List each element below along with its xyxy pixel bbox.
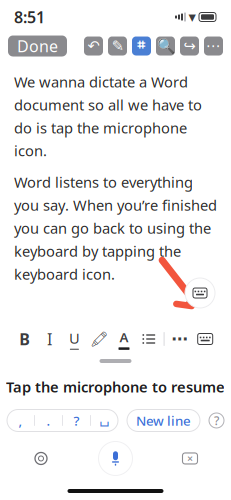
staticText: ? [214,412,219,428]
button[interactable]: Italic [40,328,60,350]
button[interactable]: Font color [114,328,134,350]
button[interactable]: Underline [64,328,84,350]
staticText: ↶ [87,38,99,54]
staticText: . [46,412,50,429]
staticText: ✎ [111,38,123,54]
button[interactable]: Undo [84,36,103,55]
button[interactable]: Select [132,36,151,55]
staticText: A [119,328,128,346]
button[interactable]: More formatting [169,328,189,350]
button[interactable]: ⌴ [91,409,118,431]
staticText: New line [136,412,191,429]
button[interactable]: Bulleted list [139,328,159,350]
staticText: U [69,328,80,348]
staticText: Word listens to everything you say. When… [14,172,217,284]
staticText: ? [73,412,79,429]
button[interactable]: Show keyboard [185,278,215,308]
button[interactable]: Keyboard [194,328,216,350]
button[interactable]: New line [127,409,200,431]
staticText: 🔍 [156,38,174,54]
button[interactable]: ? [63,409,90,431]
button[interactable]: Bold [15,328,35,350]
button[interactable]: Search [156,36,175,55]
button[interactable]: Markup [108,36,127,55]
staticText: ⌴ [99,407,109,434]
button[interactable]: , [7,409,34,431]
staticText: , [18,412,22,429]
staticText: 8:51 [14,6,45,28]
staticText: B [19,328,30,350]
staticText: ⋯ [171,330,187,348]
button[interactable]: Done [8,35,67,56]
staticText: × [187,451,193,466]
staticText: ▾ [188,9,195,25]
button[interactable]: More [204,36,223,55]
staticText: I [47,328,52,350]
staticText: Tap the microphone to resume [6,377,225,396]
staticText: ⌗ [137,37,146,55]
button[interactable]: Delete [177,445,203,471]
button[interactable]: Microphone [98,441,132,475]
button[interactable]: Dictation settings [28,445,54,471]
staticText: ⋯ [206,38,221,54]
button[interactable]: . [35,409,62,431]
button[interactable]: Share [180,36,199,55]
staticText: Done [17,35,58,57]
button[interactable]: Dictation help [209,413,224,428]
staticText: ↪ [183,38,195,54]
staticText: We wanna dictate a Word document so all … [14,72,202,160]
button[interactable]: Highlight [89,328,109,350]
staticText: 🖍 [90,331,109,347]
